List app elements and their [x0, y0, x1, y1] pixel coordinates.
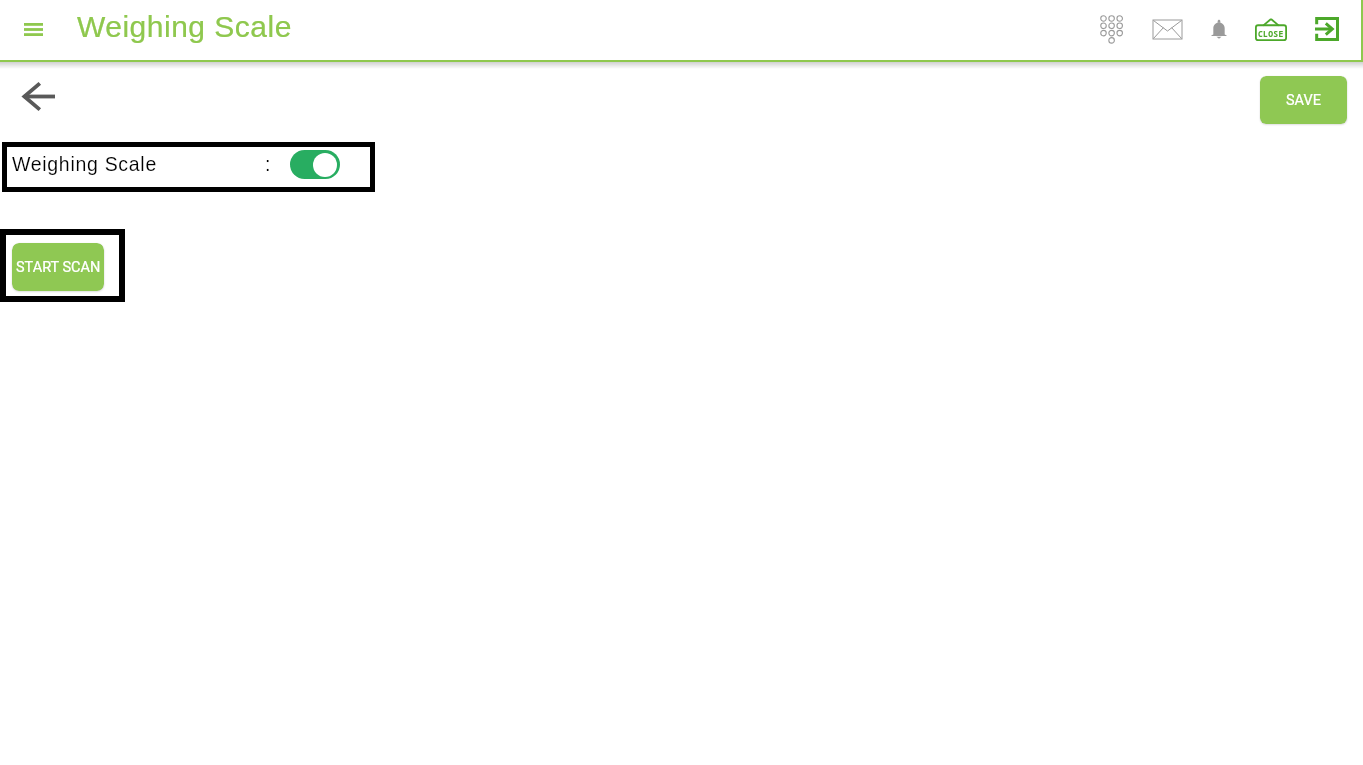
staticText: CLOSE	[1258, 28, 1284, 39]
button[interactable]: Weighing Scale	[2, 142, 375, 192]
staticText: START SCAN	[16, 259, 101, 276]
staticText: Weighing Scale	[12, 153, 157, 175]
staticText: :	[265, 153, 271, 175]
button[interactable]: START SCAN	[12, 243, 104, 291]
button[interactable]: Menu	[14, 9, 53, 50]
button[interactable]: Notifications	[1199, 8, 1239, 50]
button[interactable]: Back	[22, 81, 55, 112]
button[interactable]: Mail	[1147, 8, 1187, 50]
staticText: Weighing Scale	[77, 10, 292, 44]
button[interactable]	[290, 150, 340, 179]
staticText: SAVE	[1286, 92, 1321, 109]
button[interactable]: Logout	[1307, 8, 1347, 50]
button[interactable]: Close	[1251, 8, 1291, 50]
button[interactable]: SAVE	[1260, 76, 1347, 124]
button[interactable]: Apps	[1091, 8, 1131, 50]
